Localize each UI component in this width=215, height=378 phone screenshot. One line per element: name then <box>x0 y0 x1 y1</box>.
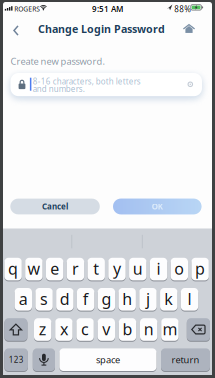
staticText: v <box>102 318 110 340</box>
button[interactable]: o <box>171 258 188 280</box>
staticText: a <box>19 288 28 309</box>
button[interactable]: OK <box>113 199 201 214</box>
button[interactable]: w <box>25 258 43 280</box>
button[interactable]: h <box>118 288 136 311</box>
staticText: OK <box>152 201 163 212</box>
staticText: h <box>122 288 132 309</box>
button[interactable]: v <box>98 318 115 341</box>
button[interactable]: return <box>161 348 210 371</box>
staticText: f <box>83 288 89 309</box>
staticText: space <box>96 353 120 366</box>
staticText: p <box>195 258 205 279</box>
staticText: 123 <box>9 354 24 365</box>
staticText: w <box>27 258 40 279</box>
staticText: k <box>164 288 173 309</box>
button[interactable]: Shift <box>4 318 27 341</box>
staticText: j <box>146 288 150 309</box>
staticText: return <box>171 353 199 366</box>
button[interactable]: p <box>191 258 209 280</box>
button[interactable]: e <box>46 258 63 280</box>
staticText: Change Login Password <box>38 22 165 36</box>
button[interactable]: r <box>67 258 84 280</box>
staticText: l <box>187 288 191 309</box>
button[interactable]: f <box>77 288 94 311</box>
staticText: ROGERS <box>14 4 40 13</box>
staticText: z <box>39 318 47 340</box>
staticText: n <box>144 318 154 340</box>
staticText: x <box>60 318 68 340</box>
button[interactable]: Cancel <box>10 199 100 214</box>
staticText: o <box>174 258 184 279</box>
button[interactable]: d <box>56 288 74 311</box>
staticText: g <box>101 288 111 309</box>
staticText: b <box>122 318 132 340</box>
button[interactable]: t <box>87 258 105 280</box>
button[interactable]: New password <box>10 73 202 96</box>
button[interactable]: b <box>119 318 136 341</box>
staticText: m <box>162 318 177 340</box>
staticText: c <box>81 318 89 340</box>
button[interactable]: x <box>55 318 73 341</box>
staticText: e <box>50 258 59 279</box>
staticText: Create new password. <box>10 55 105 67</box>
staticText: y <box>113 258 121 279</box>
staticText: 9:51 AM <box>92 4 123 14</box>
button[interactable]: space <box>59 348 156 371</box>
staticText: s <box>40 288 48 309</box>
staticText: r <box>72 258 79 279</box>
button[interactable]: Show password <box>185 81 195 87</box>
button[interactable]: u <box>129 258 146 280</box>
staticText: t <box>93 258 99 279</box>
staticText: d <box>60 288 70 309</box>
button[interactable]: l <box>181 288 198 311</box>
button[interactable]: Delete <box>187 318 210 341</box>
button[interactable]: n <box>140 318 157 341</box>
button[interactable]: k <box>160 288 177 311</box>
staticText: 88% <box>174 4 191 14</box>
button[interactable]: Back <box>9 22 23 38</box>
button[interactable]: Dictate <box>33 348 55 371</box>
button[interactable]: z <box>34 318 51 341</box>
button[interactable]: y <box>108 258 126 280</box>
button[interactable]: g <box>98 288 115 311</box>
staticText: u <box>133 258 143 279</box>
staticText: i <box>157 258 161 279</box>
button[interactable]: a <box>15 288 32 311</box>
button[interactable]: 123 <box>4 348 28 371</box>
staticText: and numbers. <box>33 84 85 94</box>
staticText: Cancel <box>42 201 68 212</box>
staticText: 8-16 characters, both letters <box>33 76 141 87</box>
button[interactable]: s <box>35 288 53 311</box>
button[interactable]: i <box>150 258 167 280</box>
button[interactable]: j <box>139 288 157 311</box>
button[interactable]: Home <box>181 21 197 35</box>
button[interactable]: q <box>4 258 22 280</box>
button[interactable]: m <box>161 318 179 341</box>
button[interactable]: c <box>76 318 94 341</box>
staticText: q <box>8 258 18 279</box>
